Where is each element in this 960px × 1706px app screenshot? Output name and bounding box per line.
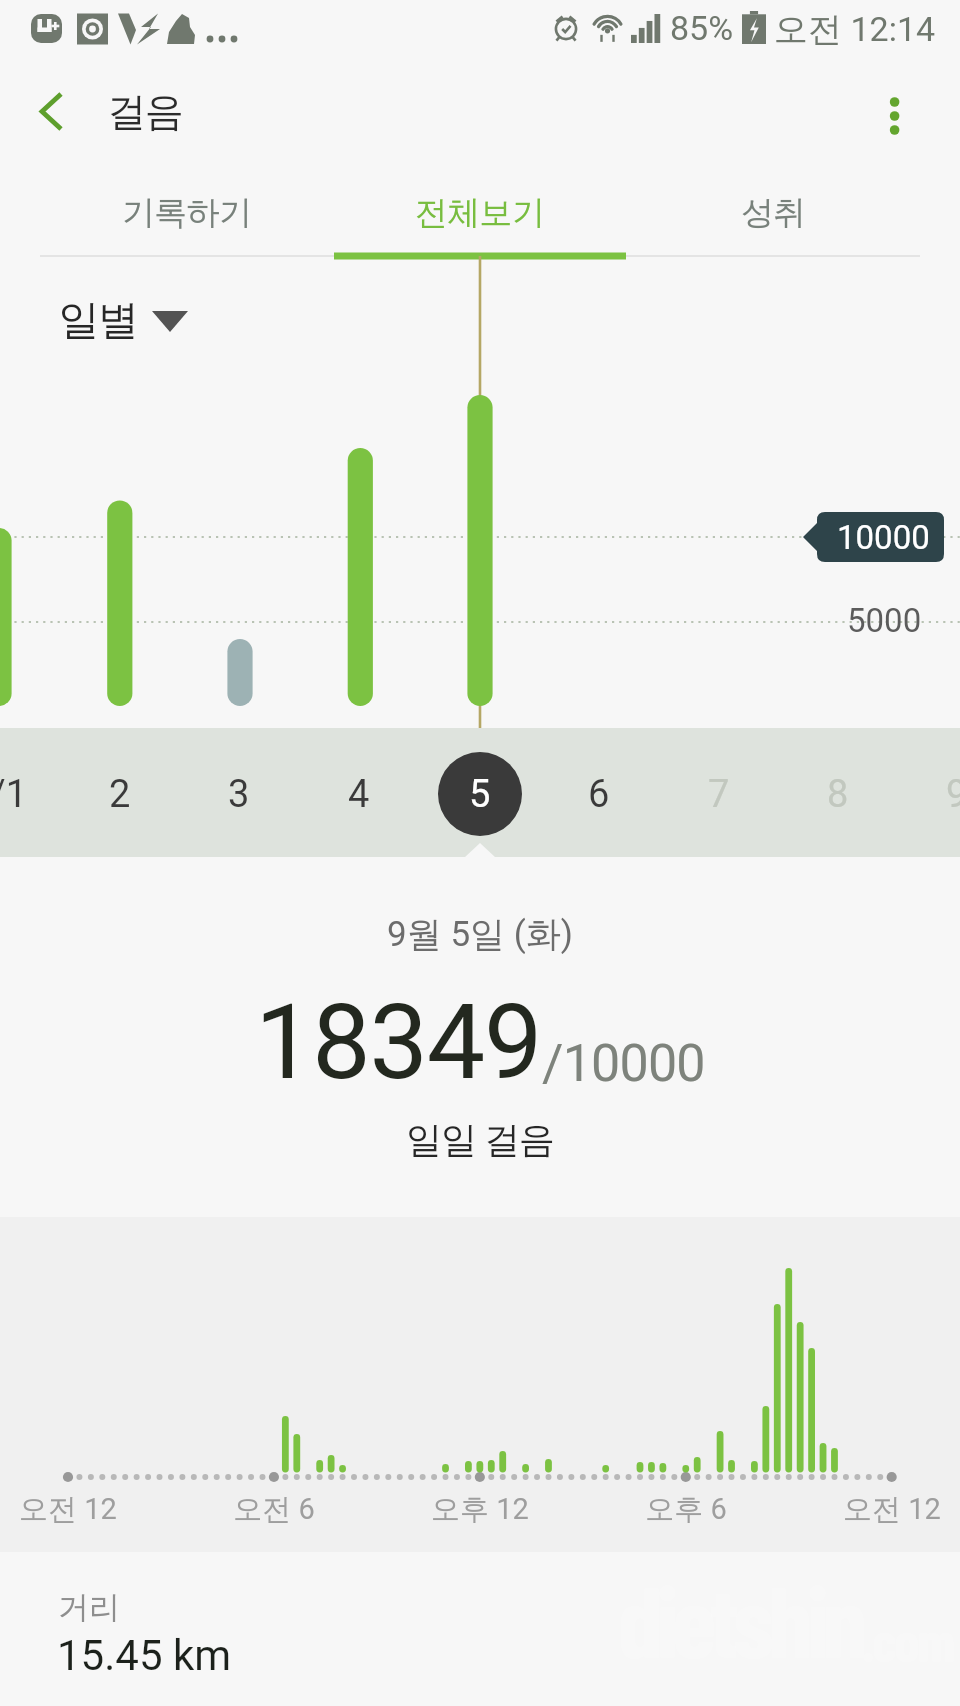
staticText: 오전 12 [0, 1491, 158, 1528]
button[interactable]: 4 [317, 752, 401, 836]
staticText: 오전 6 [184, 1491, 364, 1528]
staticText: /1 [0, 772, 28, 817]
staticText: 2 [109, 772, 131, 817]
button[interactable]: 9 [915, 752, 960, 836]
staticText: 성취 [741, 192, 806, 234]
staticText: 85% [670, 8, 734, 48]
button[interactable]: 성취 [626, 171, 920, 255]
button[interactable]: 일별 [44, 288, 204, 358]
staticText: 18349 [255, 982, 542, 1104]
staticText: 오전 12:14 [774, 8, 936, 51]
staticText: 걸음 [108, 87, 183, 136]
button[interactable]: 전체보기 [334, 171, 626, 255]
button[interactable]: /1 [0, 752, 51, 836]
staticText: 거리 [58, 1588, 120, 1627]
staticText: 오후 6 [596, 1491, 776, 1528]
button[interactable]: 3 [197, 752, 281, 836]
staticText: 6 [588, 772, 610, 817]
staticText: 5 [469, 772, 491, 817]
staticText: 15.45 km [57, 1631, 232, 1680]
staticText: /10000 [542, 1033, 705, 1094]
staticText: 9월 5일 (화) [0, 912, 960, 956]
button[interactable]: 5 [438, 752, 522, 836]
button[interactable]: More options [858, 70, 936, 162]
staticText: 7 [708, 772, 730, 817]
staticText: 5000 [847, 601, 922, 640]
button[interactable]: Back [12, 70, 92, 162]
button[interactable]: 8 [796, 752, 880, 836]
staticText: 4 [348, 772, 370, 817]
staticText: 전체보기 [415, 192, 545, 234]
staticText: 일일 걸음 [0, 1117, 960, 1162]
staticText: 일별 [59, 295, 138, 347]
button[interactable]: 2 [78, 752, 162, 836]
button[interactable]: 7 [677, 752, 761, 836]
staticText: 오후 12 [390, 1491, 570, 1528]
staticText: 오전 12 [802, 1491, 960, 1528]
button[interactable]: 기록하기 [40, 171, 334, 255]
staticText: 8 [827, 772, 849, 817]
staticText: 3 [228, 772, 250, 817]
staticText: 기록하기 [122, 192, 252, 234]
button[interactable]: 6 [557, 752, 641, 836]
staticText: 9 [946, 772, 960, 817]
staticText: 10000 [837, 518, 930, 557]
